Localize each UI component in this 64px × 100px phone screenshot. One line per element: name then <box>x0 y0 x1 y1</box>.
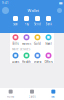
button[interactable]: Movies <box>21 34 32 45</box>
staticText: Send <box>34 22 41 26</box>
staticText: Loans <box>12 60 19 64</box>
button[interactable]: Offers <box>43 52 54 64</box>
staticText: Wallet <box>27 8 38 13</box>
staticText: Invest <box>33 60 41 64</box>
button[interactable]: Scan <box>10 16 21 26</box>
staticText: Offers <box>44 60 52 64</box>
button[interactable]: Loans <box>10 52 21 64</box>
button[interactable]: Bank <box>43 16 54 26</box>
button[interactable]: Invest <box>32 52 43 64</box>
staticText: Scan <box>13 22 18 26</box>
button[interactable]: Bills <box>10 34 21 45</box>
staticText: Travel <box>45 42 52 45</box>
button[interactable]: Pay <box>21 16 32 26</box>
button[interactable]: Health <box>21 52 32 64</box>
staticText: ▮▮▮ <box>59 1 62 4</box>
staticText: Movies <box>22 42 31 45</box>
button[interactable]: Cards <box>21 90 43 98</box>
staticText: Me <box>51 95 55 98</box>
button[interactable]: Travel <box>43 34 54 45</box>
button[interactable]: Me <box>43 90 64 98</box>
button[interactable]: Home <box>0 90 21 98</box>
staticText: Gold <box>34 42 41 45</box>
button[interactable]: Gold <box>32 34 43 45</box>
staticText: Home <box>7 95 15 98</box>
button[interactable]: Send <box>32 16 43 26</box>
staticText: More services <box>12 47 30 51</box>
staticText: Pay <box>24 22 28 26</box>
staticText: Cards <box>28 95 35 98</box>
staticText: 9:41 <box>2 1 9 5</box>
staticText: Bank <box>45 22 51 26</box>
staticText: Health <box>22 60 31 64</box>
staticText: Bills <box>12 42 18 45</box>
